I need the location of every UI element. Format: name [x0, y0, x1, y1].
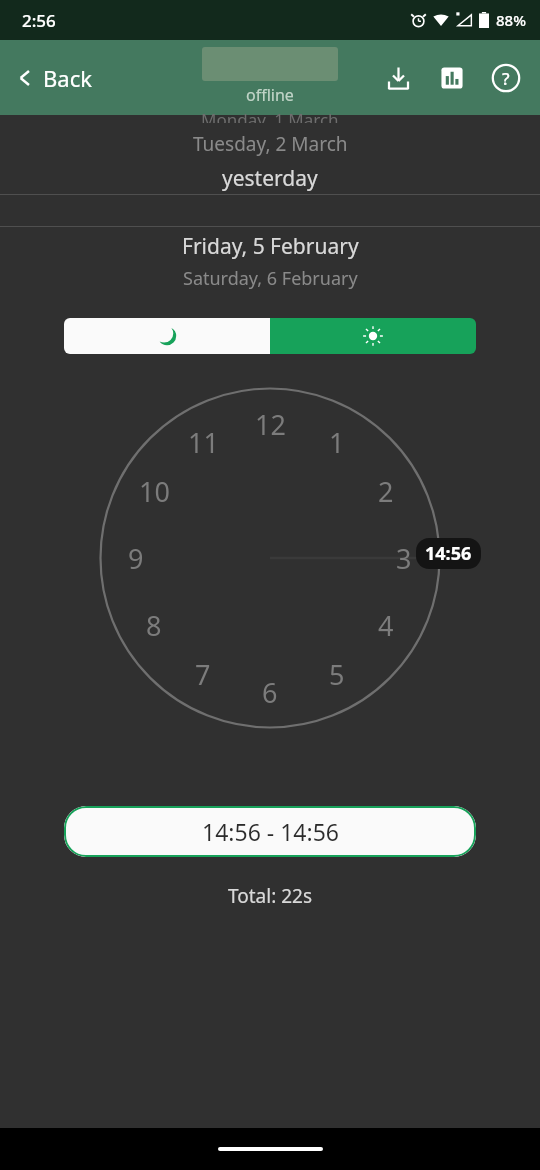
staticText: 11	[188, 424, 219, 461]
staticText: 2:56	[22, 9, 56, 32]
staticText: Back	[43, 63, 92, 93]
staticText: 14:56	[425, 541, 472, 566]
staticText: 88%	[496, 10, 526, 30]
staticText: Total: 22s	[0, 883, 540, 909]
button[interactable]: Day	[270, 318, 476, 354]
staticText: Saturday, 6 February	[183, 266, 358, 291]
button[interactable]: Download	[378, 58, 418, 98]
staticText: 2	[378, 473, 394, 510]
button[interactable]: Help	[486, 58, 526, 98]
staticText: 12	[255, 406, 286, 443]
staticText: 3	[396, 540, 412, 577]
staticText: Tuesday, 2 March	[193, 131, 348, 157]
button[interactable]: Back	[0, 55, 104, 101]
staticText: 7	[195, 656, 211, 693]
staticText: offline	[246, 84, 294, 106]
staticText: 10	[139, 473, 170, 510]
button[interactable]: Friday, 5 February	[0, 227, 540, 299]
staticText: 9	[128, 540, 144, 577]
staticText: Monday, 1 March	[201, 108, 339, 123]
button[interactable]: 14:56 - 14:56	[64, 806, 476, 857]
staticText: 4	[378, 607, 394, 644]
button[interactable]: Night	[64, 318, 270, 354]
button[interactable]: Monday, 1 March	[0, 115, 540, 194]
staticText: 8	[146, 607, 162, 644]
button[interactable]: Statistics	[432, 58, 472, 98]
button[interactable]: Time of day selector	[99, 387, 441, 729]
staticText: yesterday	[222, 164, 318, 193]
staticText: Friday, 5 February	[182, 232, 359, 261]
staticText: 14:56 - 14:56	[202, 816, 339, 847]
staticText: ?	[502, 67, 510, 90]
staticText: 1	[329, 424, 345, 461]
button[interactable]: 14:56	[416, 538, 481, 569]
staticText: 6	[262, 674, 278, 711]
staticText: 5	[329, 656, 345, 693]
